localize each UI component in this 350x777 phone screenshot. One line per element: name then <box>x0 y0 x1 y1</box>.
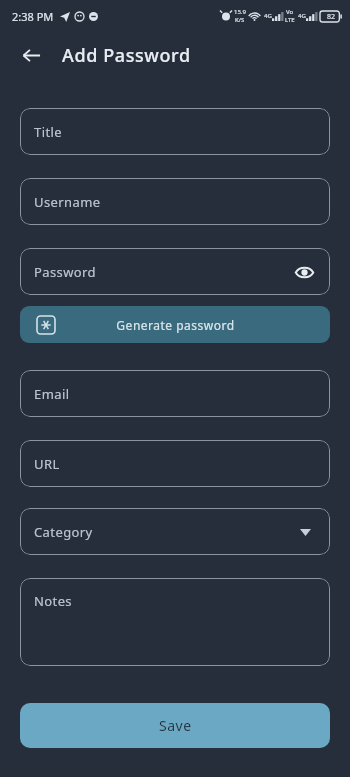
staticText: 15.9 <box>234 8 246 16</box>
button[interactable]: Category <box>20 508 330 555</box>
staticText: 82 <box>327 12 336 22</box>
staticText: Save <box>159 716 192 735</box>
button[interactable]: Title <box>20 108 330 155</box>
staticText: Password <box>34 263 96 281</box>
staticText: LTE <box>285 16 295 24</box>
button[interactable]: Select category <box>294 521 316 543</box>
staticText: K/S <box>235 16 245 24</box>
staticText: Username <box>34 193 101 211</box>
staticText: 2:38 PM <box>12 9 54 24</box>
button[interactable]: Show password <box>292 260 316 284</box>
button[interactable]: Email <box>20 370 330 417</box>
staticText: Vo <box>286 8 294 16</box>
staticText: Category <box>34 523 93 541</box>
staticText: Generate password <box>116 317 235 333</box>
button[interactable]: Password <box>20 248 330 295</box>
button[interactable]: URL <box>20 440 330 487</box>
button[interactable]: Generate password <box>20 306 330 343</box>
button[interactable]: Back <box>14 38 48 72</box>
staticText: Email <box>34 385 70 403</box>
staticText: Title <box>34 123 62 141</box>
button[interactable]: Notes <box>20 578 330 666</box>
button[interactable]: Username <box>20 178 330 225</box>
staticText: Notes <box>34 592 72 610</box>
staticText: URL <box>34 455 60 473</box>
staticText: 4G <box>264 12 272 20</box>
button[interactable]: Save <box>20 703 330 748</box>
staticText: 4G <box>298 12 306 20</box>
staticText: Add Password <box>62 43 191 68</box>
